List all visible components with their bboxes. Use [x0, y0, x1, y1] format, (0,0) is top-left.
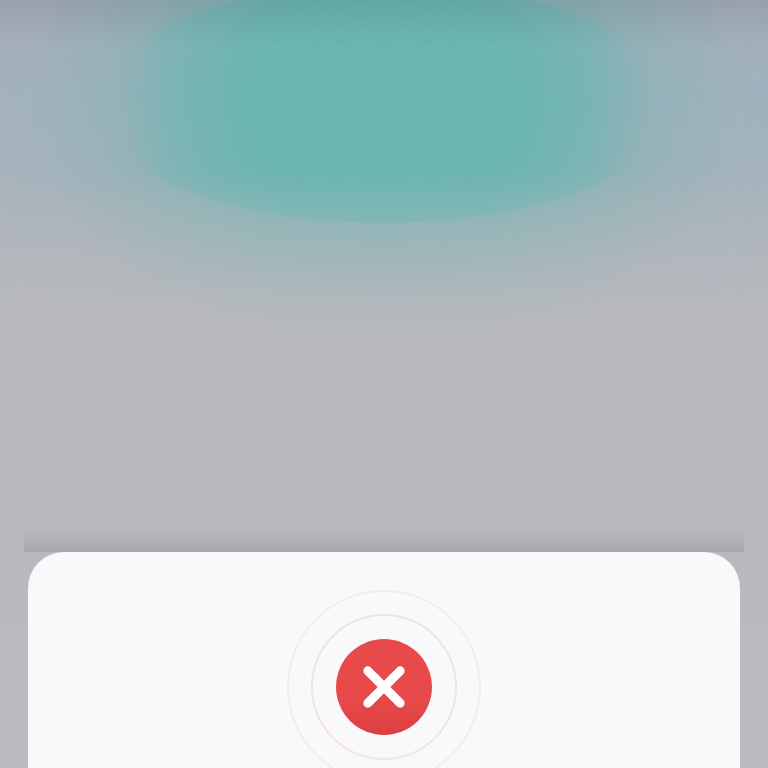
button[interactable]: End call [336, 639, 432, 735]
